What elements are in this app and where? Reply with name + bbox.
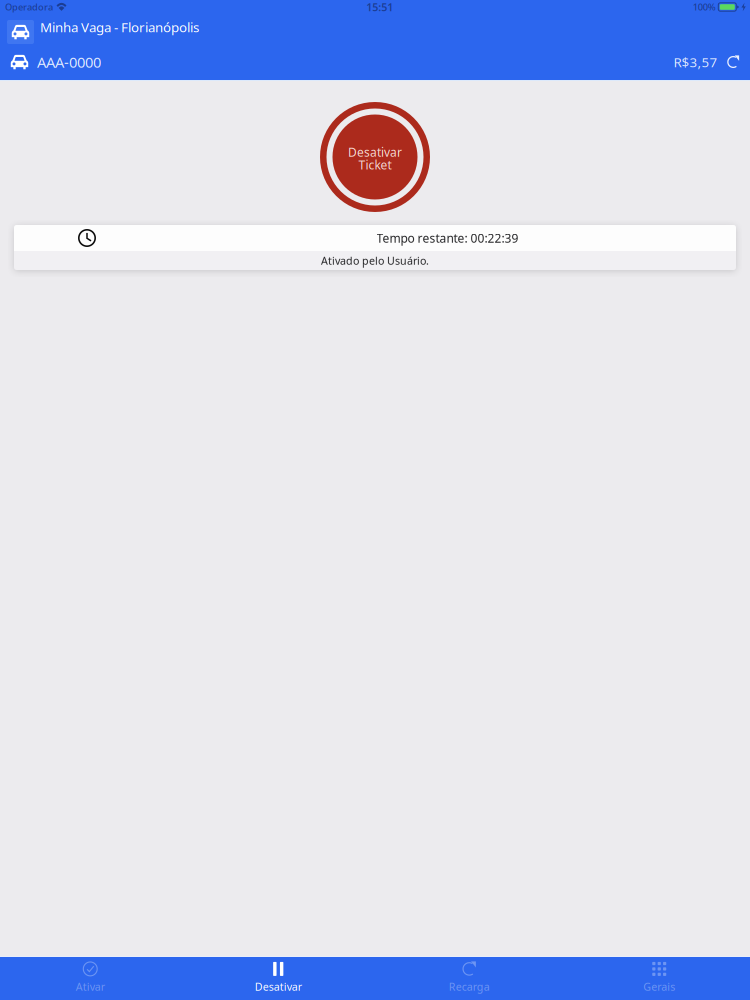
staticText: Gerais <box>643 979 675 994</box>
button[interactable]: Desativar <box>187 957 375 1000</box>
staticText: Tempo restante: 00:22:39 <box>376 230 518 246</box>
staticText: AAA-0000 <box>37 52 101 72</box>
button[interactable]: Minha Vaga - Florianópolis <box>0 20 750 44</box>
staticText: Minha Vaga - Florianópolis <box>40 18 199 36</box>
staticText: Recarga <box>449 979 490 994</box>
button[interactable]: Ativar <box>0 957 187 1000</box>
staticText: Operadora <box>5 1 53 13</box>
staticText: 15:51 <box>366 0 393 14</box>
staticText: R$3,57 <box>673 53 717 71</box>
staticText: Desativar <box>348 144 402 160</box>
button[interactable]: AAA-0000 <box>0 53 101 71</box>
staticText: Ativado pelo Usuário. <box>321 253 429 268</box>
staticText: Desativar <box>255 979 302 994</box>
staticText: 100% <box>693 1 716 13</box>
button[interactable]: R$3,57 <box>673 53 750 71</box>
button[interactable]: Gerais <box>562 957 750 1000</box>
button[interactable]: Desativar <box>320 102 430 212</box>
staticText: Ticket <box>358 157 391 173</box>
staticText: Ativar <box>76 979 105 994</box>
button[interactable]: Recarga <box>375 957 562 1000</box>
